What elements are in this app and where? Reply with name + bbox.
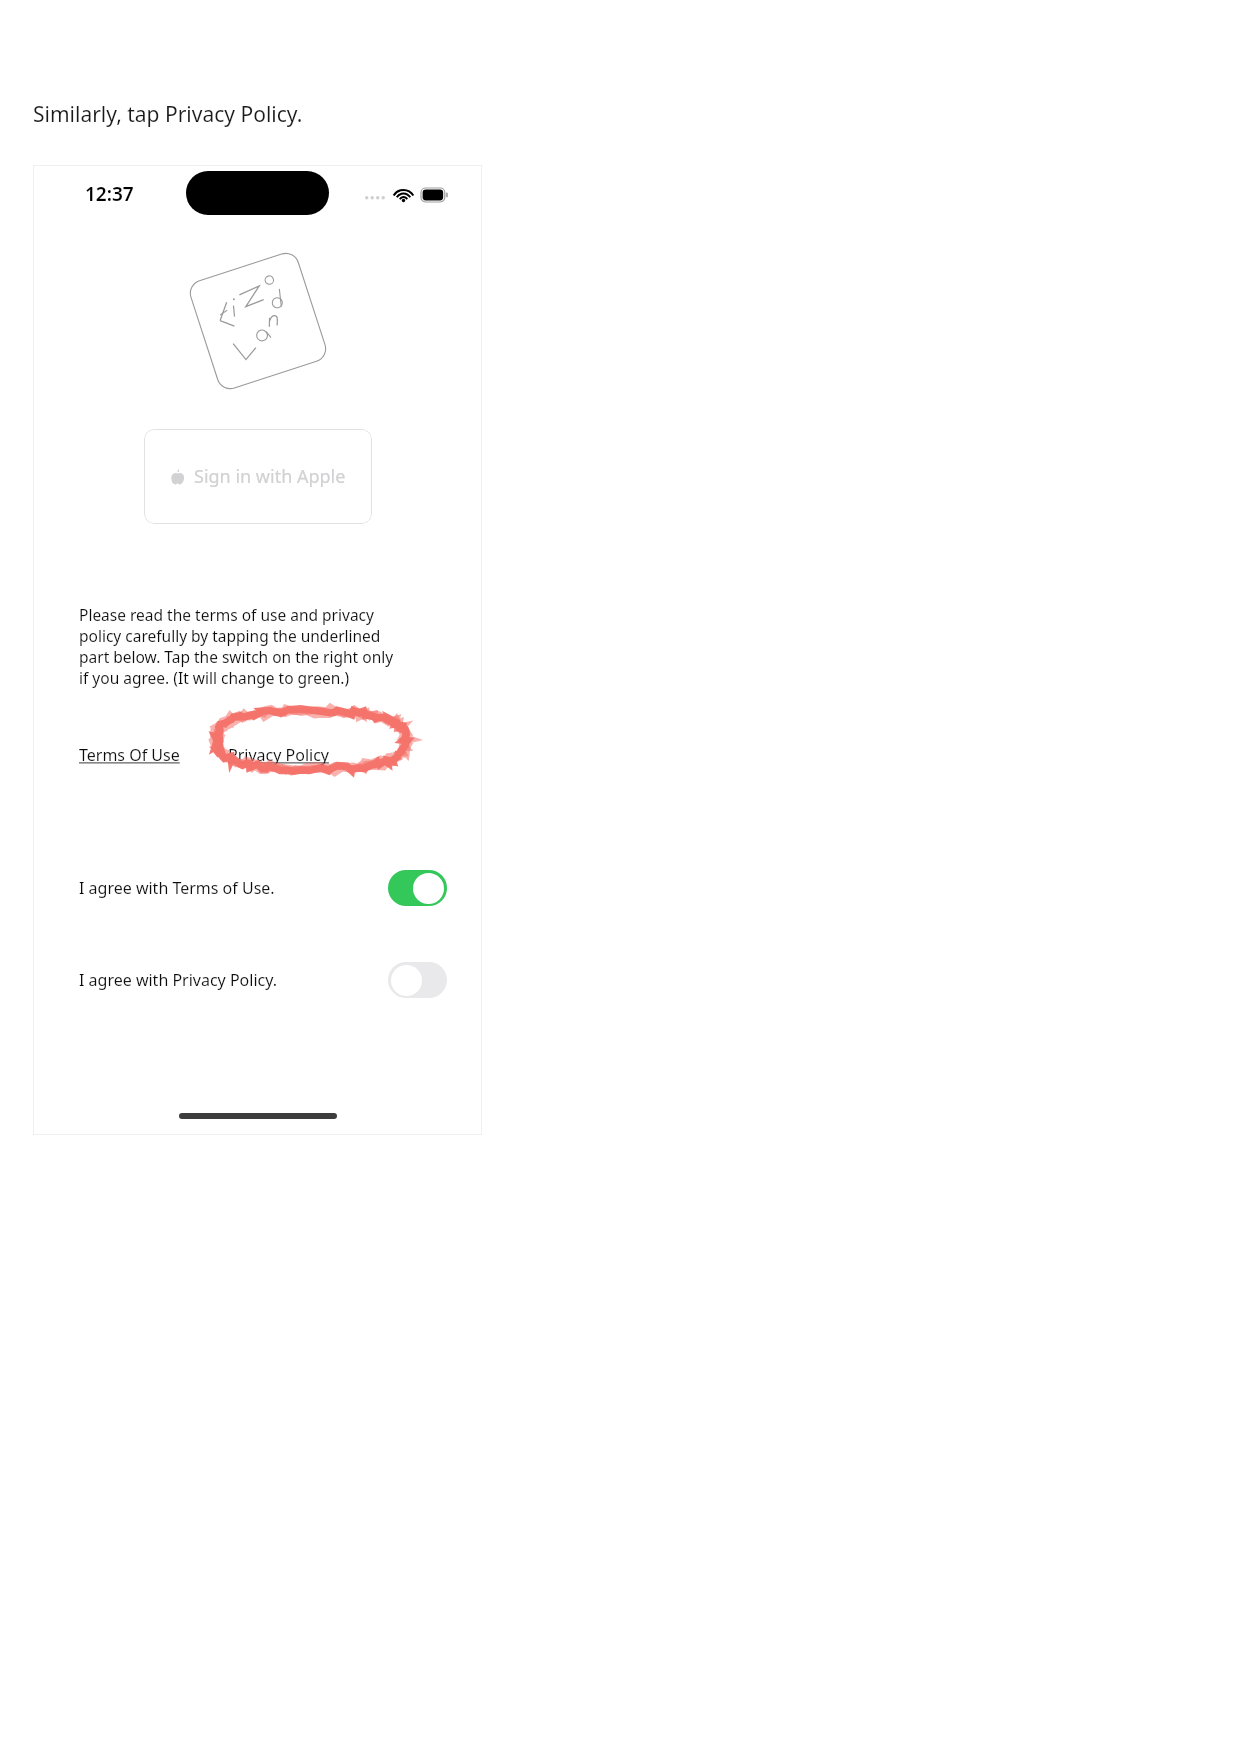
staticText: policy carefully by tapping the underlin… — [79, 625, 381, 646]
staticText: Similarly, tap Privacy Policy. — [33, 100, 303, 129]
button[interactable]: I agree with Privacy Policy. — [79, 962, 447, 998]
button[interactable]: Terms Of Use — [79, 740, 180, 770]
button[interactable]: Off — [388, 962, 447, 998]
staticText: if you agree. (It will change to green.) — [79, 667, 350, 688]
staticText: Terms Of Use — [79, 744, 180, 766]
staticText: I agree with Terms of Use. — [79, 877, 275, 899]
staticText: part below. Tap the switch on the right … — [79, 646, 394, 667]
staticText: Please read the terms of use and privacy — [79, 604, 374, 625]
button[interactable]: I agree with Terms of Use. — [79, 870, 447, 906]
staticText: 12:37 — [85, 181, 134, 207]
staticText: Privacy Policy — [228, 744, 329, 766]
staticText: Sign in with Apple — [194, 464, 346, 489]
button[interactable]: Privacy Policy — [228, 740, 329, 770]
button[interactable]: On — [388, 870, 447, 906]
staticText: I agree with Privacy Policy. — [79, 969, 278, 991]
button[interactable]: Sign in with Apple — [144, 429, 372, 524]
